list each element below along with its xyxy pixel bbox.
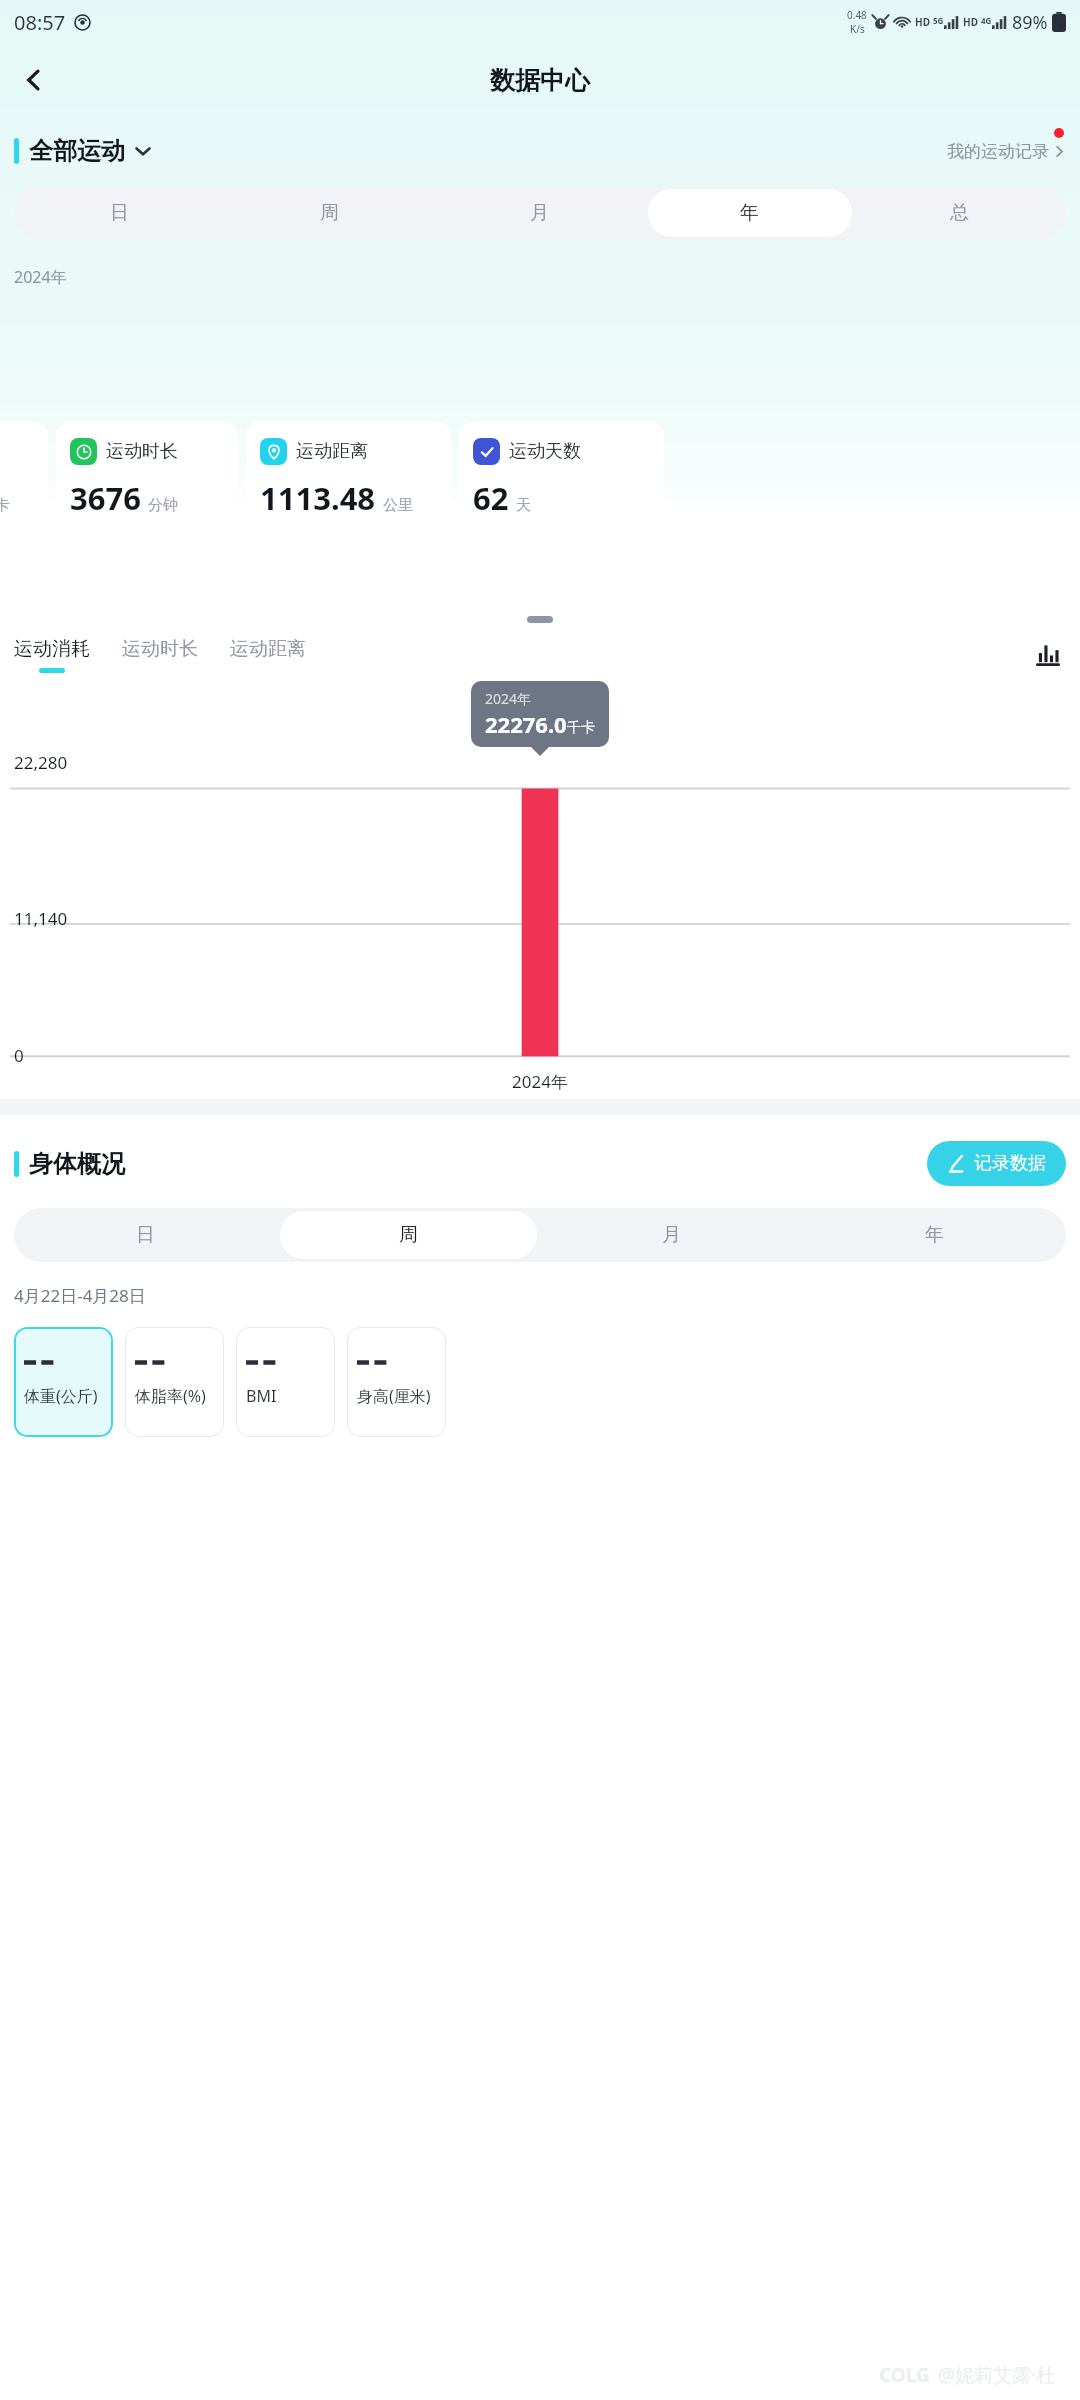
staticText: 11,140 xyxy=(14,907,68,930)
staticText: 月 xyxy=(662,1223,681,1247)
staticText: 2024年 xyxy=(485,689,532,708)
button[interactable]: 总 xyxy=(854,186,1064,240)
button[interactable]: 年 xyxy=(803,1208,1066,1262)
button[interactable]: 体脂率(%) xyxy=(125,1327,224,1437)
button[interactable]: 日 xyxy=(14,186,224,240)
staticText: 公里 xyxy=(383,496,413,515)
staticText: 22,280 xyxy=(14,751,68,774)
button[interactable]: 月 xyxy=(540,1208,803,1262)
button[interactable]: 记录数据 xyxy=(927,1141,1066,1186)
staticText: 3676 xyxy=(70,477,141,519)
staticText: 4G xyxy=(981,15,992,26)
staticText: 我的运动记录 xyxy=(947,141,1049,162)
staticText: 2024年 xyxy=(512,1070,568,1093)
button[interactable]: 周 xyxy=(224,186,434,240)
button[interactable]: 运动消耗 xyxy=(0,422,48,534)
button[interactable]: Chart type xyxy=(1030,637,1066,673)
staticText: 运动距离 xyxy=(296,440,368,463)
staticText: 月 xyxy=(530,201,549,225)
button[interactable]: 身高(厘米) xyxy=(347,1327,446,1437)
staticText: 总 xyxy=(950,201,969,225)
staticText: 体脂率(%) xyxy=(135,1385,206,1407)
staticText: 22276.0 xyxy=(485,709,567,739)
staticText: HD xyxy=(915,15,930,29)
staticText: COLG xyxy=(879,2362,930,2388)
staticText: 运动消耗 xyxy=(14,637,90,661)
button[interactable]: 运动时长 xyxy=(56,422,238,534)
staticText: 日 xyxy=(136,1223,155,1247)
staticText: 全部运动 xyxy=(29,136,125,166)
staticText: 千卡 xyxy=(0,496,10,515)
button[interactable]: 运动时长 xyxy=(122,637,198,673)
staticText: 2024年 xyxy=(14,266,67,288)
staticText: 体重(公斤) xyxy=(24,1385,98,1407)
staticText: 身高(厘米) xyxy=(357,1385,431,1407)
button[interactable]: 月 xyxy=(434,186,644,240)
button[interactable]: 周 xyxy=(277,1208,540,1262)
staticText: 年 xyxy=(925,1223,944,1247)
staticText: 千卡 xyxy=(567,719,595,737)
staticText: 记录数据 xyxy=(974,1152,1046,1175)
staticText: 年 xyxy=(740,201,759,225)
staticText: K/s xyxy=(850,22,865,36)
button[interactable]: BMI xyxy=(236,1327,335,1437)
staticText: 89% xyxy=(1012,10,1048,35)
button[interactable]: 年 xyxy=(644,186,854,240)
staticText: 天 xyxy=(516,496,531,515)
staticText: 1113.48 xyxy=(260,477,376,519)
button[interactable]: 运动天数 xyxy=(459,422,664,534)
staticText: 运动时长 xyxy=(106,440,178,463)
button[interactable]: 我的运动记录 xyxy=(947,141,1066,162)
staticText: 身体概况 xyxy=(29,1149,125,1179)
staticText: 周 xyxy=(399,1223,418,1247)
button[interactable]: 全部运动 xyxy=(14,136,152,166)
staticText: 运动距离 xyxy=(230,637,306,661)
staticText: 运动天数 xyxy=(509,440,581,463)
staticText: 0.48 xyxy=(847,8,867,22)
staticText: 62 xyxy=(473,477,509,519)
staticText: 5G xyxy=(933,15,944,26)
button[interactable]: 运动距离 xyxy=(230,637,306,673)
staticText: 08:57 xyxy=(14,9,66,36)
staticText: HD xyxy=(963,15,978,29)
button[interactable]: 体重(公斤) xyxy=(14,1327,113,1437)
button[interactable]: 日 xyxy=(14,1208,277,1262)
staticText: @妮莉艾露·杜 xyxy=(938,2362,1056,2388)
staticText: 0 xyxy=(14,1044,24,1067)
staticText: 数据中心 xyxy=(490,65,590,96)
button[interactable]: 运动距离 xyxy=(246,422,451,534)
button[interactable]: Back xyxy=(6,52,62,108)
staticText: 分钟 xyxy=(148,496,178,515)
staticText: BMI xyxy=(246,1385,277,1407)
button[interactable]: 运动消耗 xyxy=(14,637,90,673)
staticText: 周 xyxy=(320,201,339,225)
staticText: 运动时长 xyxy=(122,637,198,661)
staticText: 4月22日-4月28日 xyxy=(14,1284,146,1307)
staticText: 日 xyxy=(110,201,129,225)
